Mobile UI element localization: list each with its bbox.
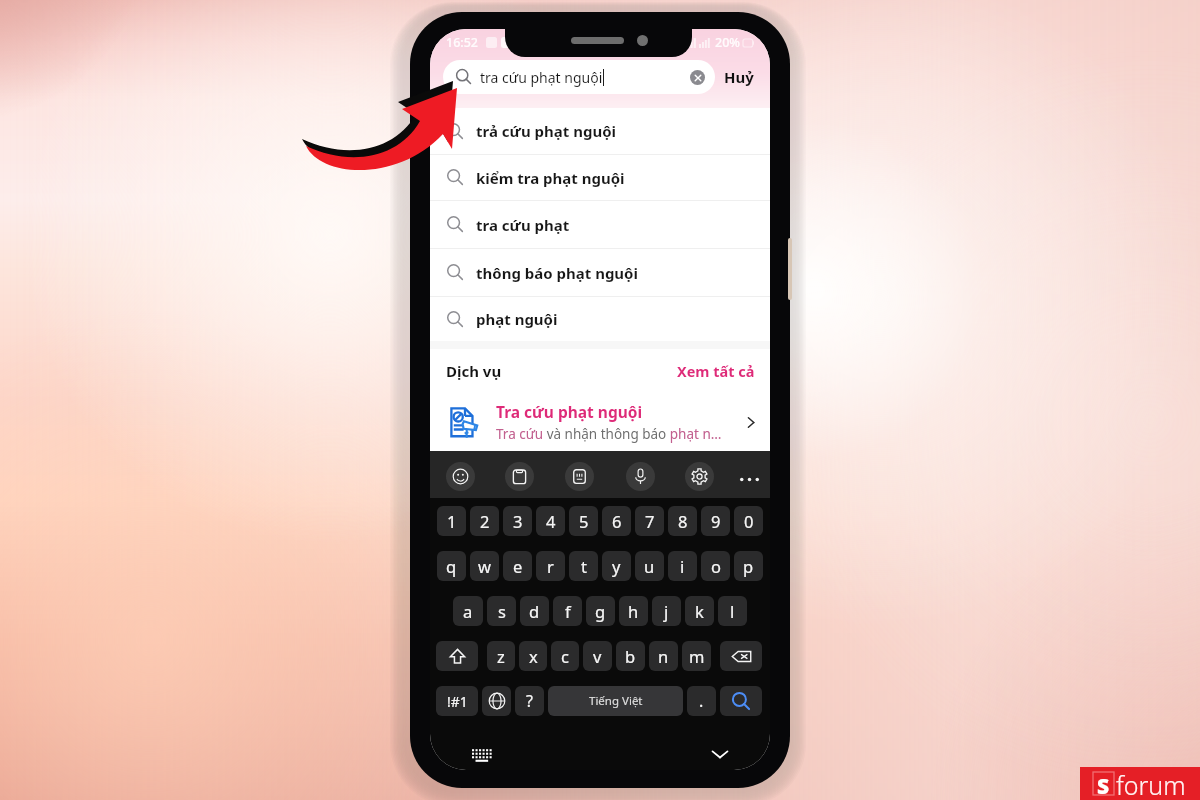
button[interactable]: 8: [668, 506, 697, 536]
staticText: u: [644, 555, 655, 577]
button[interactable]: 3: [503, 506, 532, 536]
button[interactable]: Search: [720, 686, 762, 716]
button[interactable]: d: [520, 596, 549, 626]
staticText: b: [625, 645, 636, 667]
button[interactable]: p: [734, 551, 763, 581]
button[interactable]: tra cứu phạt: [430, 201, 770, 248]
button[interactable]: phạt nguội: [430, 297, 770, 341]
staticText: 2: [480, 510, 490, 532]
staticText: v: [593, 645, 602, 667]
button[interactable]: Stickers: [565, 462, 594, 491]
button[interactable]: Settings: [685, 462, 714, 491]
button[interactable]: t: [569, 551, 598, 581]
button[interactable]: ?: [515, 686, 544, 716]
button[interactable]: 9: [701, 506, 730, 536]
button[interactable]: n: [649, 641, 678, 671]
staticText: g: [595, 600, 606, 622]
staticText: e: [513, 555, 523, 577]
staticText: n: [658, 645, 669, 667]
staticText: 8: [678, 510, 688, 532]
staticText: Tra cứu và nhận thông báo phạt n…: [496, 425, 722, 443]
staticText: Tra cứu phạt nguội: [496, 401, 643, 422]
staticText: 0: [744, 510, 754, 532]
button[interactable]: Xem tất cả: [677, 357, 755, 385]
button[interactable]: Change language: [482, 686, 511, 716]
button[interactable]: Switch keyboard: [470, 743, 492, 765]
staticText: s: [498, 600, 506, 622]
staticText: y: [612, 555, 621, 577]
staticText: forum: [1116, 768, 1186, 800]
button[interactable]: h: [619, 596, 648, 626]
button[interactable]: 7: [635, 506, 664, 536]
staticText: j: [664, 600, 669, 622]
button[interactable]: thông báo phạt nguội: [430, 249, 770, 296]
button[interactable]: u: [635, 551, 664, 581]
staticText: tra cứu phạt nguội: [480, 68, 603, 87]
staticText: k: [695, 600, 704, 622]
button[interactable]: Voice input: [626, 462, 655, 491]
button[interactable]: x: [519, 641, 547, 671]
staticText: w: [478, 555, 491, 577]
button[interactable]: kiểm tra phạt nguội: [430, 155, 770, 200]
staticText: a: [463, 600, 473, 622]
staticText: Tiếng Việt: [589, 693, 643, 709]
staticText: 3: [513, 510, 523, 532]
button[interactable]: 5: [569, 506, 598, 536]
button[interactable]: !#1: [436, 686, 478, 716]
staticText: z: [497, 645, 505, 667]
staticText: o: [711, 555, 721, 577]
button[interactable]: Huỷ: [715, 61, 763, 93]
button[interactable]: Clear text: [690, 70, 705, 85]
button[interactable]: Hide keyboard: [708, 742, 732, 766]
button[interactable]: b: [616, 641, 645, 671]
button[interactable]: c: [551, 641, 579, 671]
button[interactable]: s: [487, 596, 516, 626]
staticText: l: [730, 600, 735, 622]
button[interactable]: tra cứu phạt nguội: [443, 60, 715, 94]
button[interactable]: f: [553, 596, 582, 626]
staticText: 20%: [715, 34, 740, 51]
button[interactable]: y: [602, 551, 631, 581]
button[interactable]: Emoji: [446, 462, 475, 491]
staticText: q: [446, 555, 457, 577]
button[interactable]: z: [487, 641, 515, 671]
button[interactable]: m: [682, 641, 711, 671]
button[interactable]: w: [470, 551, 499, 581]
staticText: 1: [447, 510, 457, 532]
button[interactable]: Shift: [436, 641, 478, 671]
staticText: d: [529, 600, 540, 622]
button[interactable]: .: [687, 686, 716, 716]
button[interactable]: Tra cứu phạt nguội: [430, 393, 770, 451]
button[interactable]: 4: [536, 506, 565, 536]
button[interactable]: 2: [470, 506, 499, 536]
staticText: 7: [645, 510, 655, 532]
staticText: kiểm tra phạt nguội: [476, 168, 625, 188]
button[interactable]: More options: [735, 465, 763, 493]
button[interactable]: j: [652, 596, 681, 626]
staticText: Huỷ: [724, 67, 754, 87]
button[interactable]: g: [586, 596, 615, 626]
button[interactable]: trả cứu phạt nguội: [430, 108, 770, 154]
staticText: p: [743, 555, 754, 577]
button[interactable]: o: [701, 551, 730, 581]
button[interactable]: k: [685, 596, 714, 626]
button[interactable]: 0: [734, 506, 763, 536]
button[interactable]: i: [668, 551, 697, 581]
button[interactable]: v: [583, 641, 612, 671]
button[interactable]: e: [503, 551, 532, 581]
button[interactable]: l: [718, 596, 747, 626]
button[interactable]: a: [453, 596, 483, 626]
staticText: c: [561, 645, 569, 667]
button[interactable]: Backspace: [720, 641, 762, 671]
staticText: m: [689, 645, 705, 667]
staticText: 4: [546, 510, 556, 532]
button[interactable]: q: [437, 551, 466, 581]
button[interactable]: r: [536, 551, 565, 581]
button[interactable]: Tiếng Việt: [548, 686, 683, 716]
staticText: r: [547, 555, 554, 577]
button[interactable]: 6: [602, 506, 631, 536]
staticText: f: [565, 600, 571, 622]
button[interactable]: 1: [437, 506, 466, 536]
button[interactable]: Clipboard: [505, 462, 534, 491]
staticText: trả cứu phạt nguội: [476, 121, 617, 141]
